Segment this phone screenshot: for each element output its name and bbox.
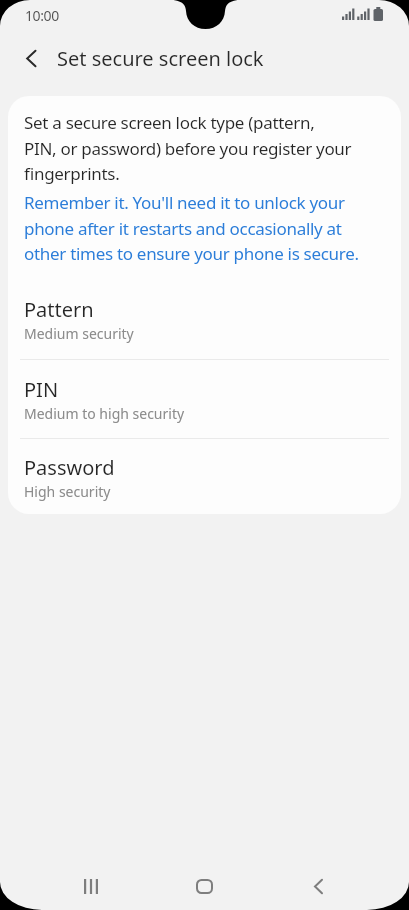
staticText: Set a secure screen lock type (pattern, …	[24, 111, 352, 185]
button[interactable]: Password	[8, 439, 401, 514]
button[interactable]	[294, 862, 342, 910]
staticText: 10:00	[25, 6, 59, 25]
staticText: High security	[24, 482, 111, 501]
button[interactable]	[13, 40, 49, 76]
button[interactable]	[67, 862, 115, 910]
staticText: Pattern	[24, 296, 94, 323]
staticText: Medium security	[24, 324, 134, 343]
staticText: Set secure screen lock	[57, 45, 264, 72]
button[interactable]: Pattern	[8, 279, 401, 359]
staticText: Medium to high security	[24, 404, 185, 423]
staticText: Remember it. You'll need it to unlock yo…	[24, 191, 359, 265]
staticText: Password	[24, 454, 115, 481]
button[interactable]: PIN	[8, 360, 401, 438]
button[interactable]	[180, 862, 228, 910]
staticText: PIN	[24, 376, 59, 403]
